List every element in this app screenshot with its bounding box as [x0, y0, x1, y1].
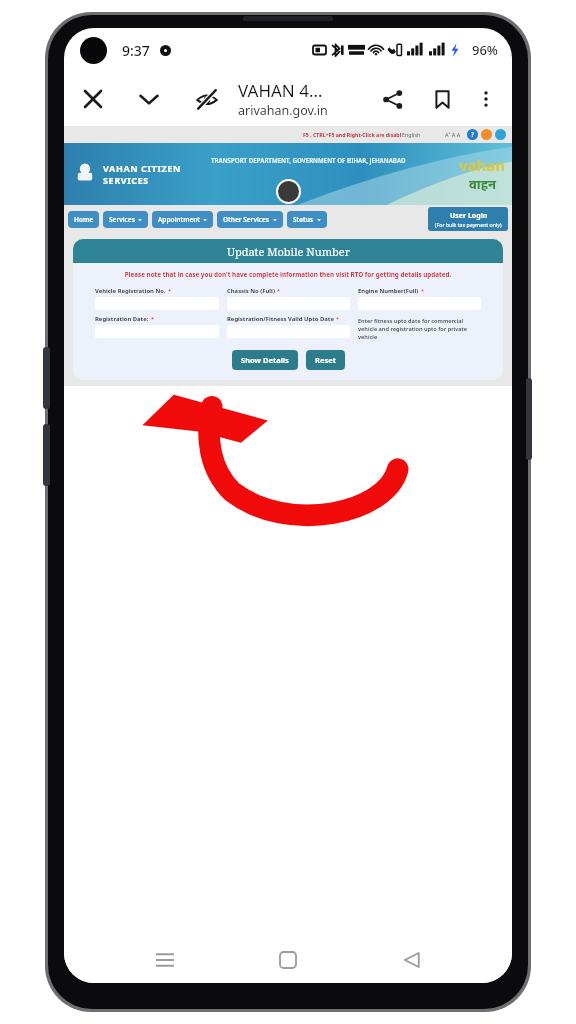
staticText: arivahan.gov.in	[238, 102, 328, 119]
button[interactable]: Services	[103, 211, 148, 228]
button[interactable]: VAHAN 4…	[238, 79, 372, 119]
staticText: Registration/Fitness Valid Upto Date	[227, 315, 334, 323]
staticText: (For bulk tax payment only)	[435, 221, 502, 228]
button[interactable]: Home	[68, 211, 99, 228]
button[interactable]: Show Details	[232, 350, 298, 370]
button[interactable]: Header action	[467, 129, 478, 140]
button[interactable]: More options	[468, 81, 504, 117]
staticText: *	[151, 315, 155, 322]
staticText: Enter fitness upto date for commercial v…	[358, 317, 481, 341]
button[interactable]: Home	[265, 937, 311, 983]
staticText: Please note that in case you don't have …	[73, 270, 503, 279]
staticText: Other Services	[223, 215, 270, 224]
button[interactable]: Appointment	[152, 211, 213, 228]
staticText: VAHAN 4…	[238, 79, 323, 102]
staticText: 9:37	[122, 41, 150, 60]
staticText: SERVICES	[103, 174, 149, 186]
staticText: *	[168, 287, 172, 294]
staticText: Registration Date:	[95, 315, 149, 323]
button[interactable]: Other Services	[217, 211, 283, 228]
staticText: Show Details	[241, 355, 289, 365]
staticText: *	[421, 287, 425, 294]
staticText: ?	[471, 130, 475, 139]
staticText: *	[277, 287, 281, 294]
staticText: English	[402, 131, 421, 138]
button[interactable]: Back	[389, 937, 435, 983]
staticText: Chassis No (Full)	[227, 287, 275, 295]
staticText: User Login	[450, 211, 488, 221]
button[interactable]: Header action	[495, 129, 506, 140]
staticText: Reset	[315, 355, 336, 365]
staticText: वाहन	[469, 175, 497, 193]
staticText: *	[336, 315, 340, 322]
staticText: A⁺ A A	[445, 131, 461, 138]
button[interactable]: Reset	[306, 350, 345, 370]
button[interactable]: Bookmark	[422, 79, 462, 119]
staticText: Engine Number(Full)	[358, 287, 419, 295]
staticText: VAHAN CITIZEN	[103, 162, 181, 174]
button[interactable]: Header action	[481, 129, 492, 140]
button[interactable]: Collapse	[128, 78, 170, 120]
button[interactable]: Share	[372, 79, 412, 119]
button[interactable]: Status	[287, 211, 327, 228]
staticText: Services	[109, 215, 135, 224]
staticText: Update Mobile Number	[227, 244, 350, 259]
staticText: Status	[293, 215, 314, 224]
button[interactable]: Recent apps	[142, 937, 188, 983]
staticText: Vehicle Registration No.	[95, 287, 166, 295]
button[interactable]: Close	[72, 78, 114, 120]
staticText: Appointment	[158, 215, 200, 224]
staticText: TRANSPORT DEPARTMENT, GOVERNMENT OF BIHA…	[211, 156, 406, 164]
button[interactable]: User Login	[428, 207, 508, 231]
staticText: Home	[74, 215, 93, 224]
staticText: F5 , CTRL+F5 and Right-Click are disabl	[303, 131, 402, 138]
button[interactable]: Hide	[186, 78, 228, 120]
staticText: 96%	[472, 41, 498, 59]
staticText: vahan	[459, 155, 506, 175]
